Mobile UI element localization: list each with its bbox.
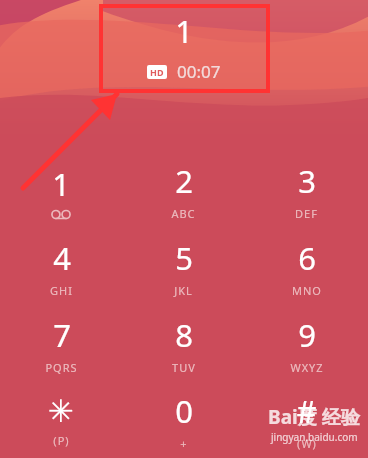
staticText: TUV — [172, 360, 196, 375]
staticText: (W) — [297, 436, 317, 451]
staticText: 5 — [175, 237, 193, 279]
button[interactable]: 6 — [245, 229, 368, 306]
staticText: 4 — [53, 237, 71, 279]
staticText: 1 — [175, 10, 193, 52]
staticText: # — [296, 390, 317, 432]
staticText: JKL — [174, 283, 193, 298]
button[interactable]: 2 — [122, 152, 245, 229]
staticText: ABC — [171, 206, 196, 221]
staticText: 2 — [175, 160, 193, 202]
button[interactable]: # — [245, 383, 368, 458]
staticText: HD — [150, 66, 164, 78]
staticText: WXYZ — [290, 360, 324, 375]
staticText: 0 — [175, 390, 193, 432]
button[interactable]: 8 — [122, 306, 245, 383]
staticText: 3 — [298, 160, 316, 202]
staticText: jingyan.baidu.com — [271, 430, 358, 444]
staticText: 7 — [53, 314, 71, 356]
button[interactable]: 3 — [245, 152, 368, 229]
button[interactable]: 5 — [122, 229, 245, 306]
staticText: PQRS — [45, 360, 78, 375]
staticText: MNO — [292, 283, 322, 298]
staticText: 1 — [52, 163, 70, 205]
staticText: 00:07 — [177, 60, 221, 83]
staticText: Bai度 经验 — [268, 404, 360, 430]
staticText: 9 — [298, 314, 316, 356]
button[interactable]: 9 — [245, 306, 368, 383]
button[interactable]: 0 — [122, 383, 245, 458]
staticText: 6 — [298, 237, 316, 279]
staticText: GHI — [50, 283, 73, 298]
button[interactable]: 7 — [0, 306, 122, 383]
staticText: DEF — [295, 206, 318, 221]
button[interactable]: 4 — [0, 229, 122, 306]
staticText: ✳ — [48, 393, 74, 429]
button[interactable]: ✳ — [0, 383, 122, 458]
staticText: 8 — [175, 314, 193, 356]
staticText: + — [180, 436, 188, 451]
staticText: (P) — [53, 433, 70, 448]
button[interactable]: 1 — [0, 152, 122, 229]
